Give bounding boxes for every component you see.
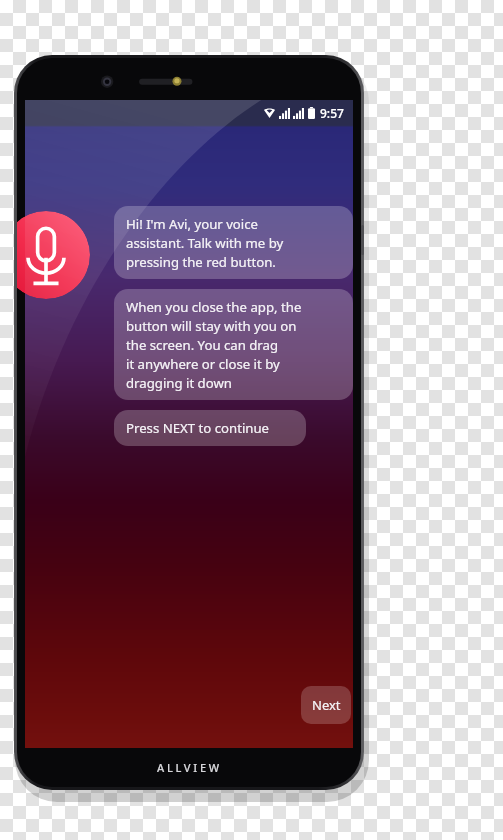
- button[interactable]: When you close the app, the button will …: [114, 289, 353, 400]
- staticText: Press NEXT to continue: [126, 419, 270, 437]
- staticText: Next: [312, 696, 341, 714]
- button[interactable]: Talk to voice assistant: [17, 211, 90, 299]
- button[interactable]: Hi! I'm Avi, your voice assistant. Talk …: [114, 206, 353, 279]
- button[interactable]: Next: [301, 686, 351, 724]
- staticText: Hi! I'm Avi, your voice assistant. Talk …: [126, 215, 284, 270]
- staticText: ALLVIEW: [157, 760, 222, 775]
- button[interactable]: Press NEXT to continue: [114, 410, 306, 446]
- staticText: When you close the app, the button will …: [126, 298, 302, 391]
- staticText: 9:57: [320, 105, 344, 121]
